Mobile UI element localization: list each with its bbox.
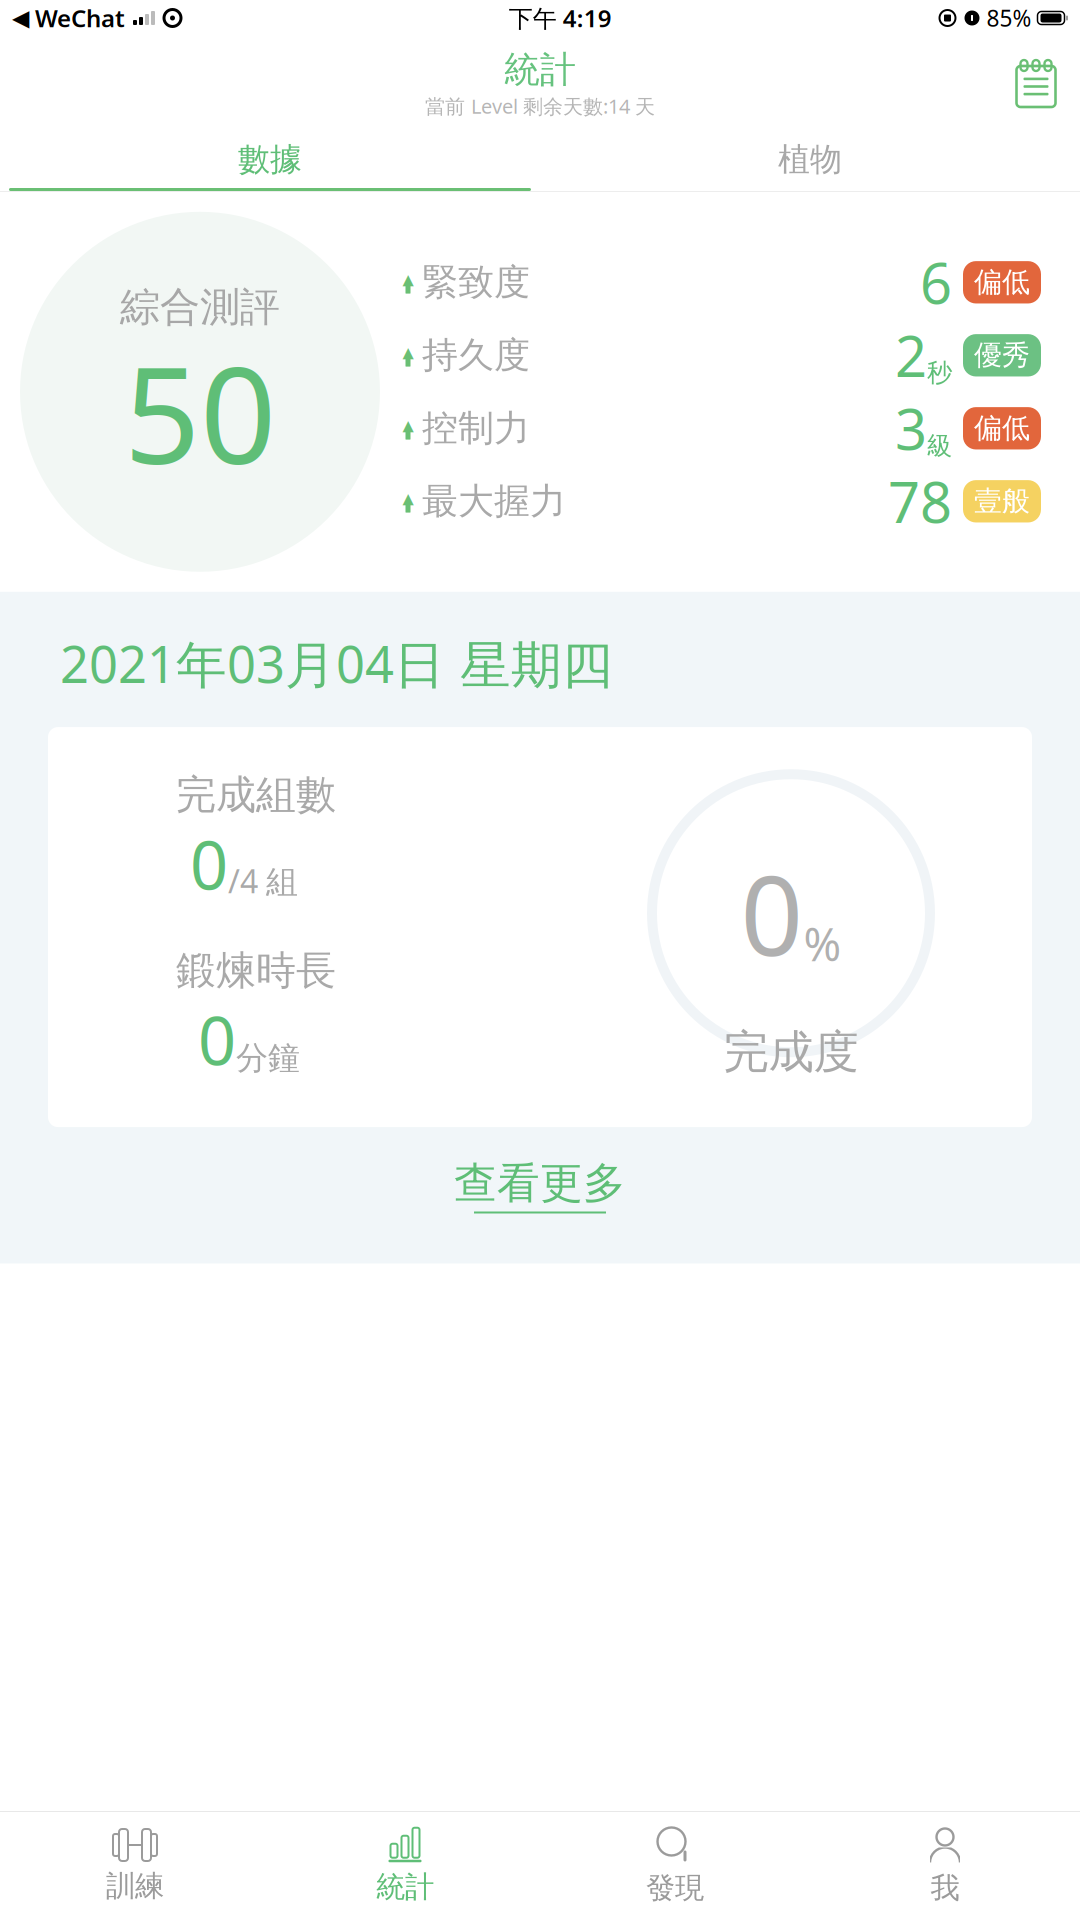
staticText: 下午 4:19 bbox=[509, 2, 612, 34]
staticText: 級 bbox=[927, 430, 952, 461]
staticText: 2021年03月04日 星期四 bbox=[60, 630, 613, 697]
staticText: 綜合測評 bbox=[120, 283, 280, 332]
staticText: 植物 bbox=[778, 140, 842, 179]
button[interactable]: 訓練 bbox=[0, 1816, 270, 1916]
staticText: 完成組數 bbox=[176, 770, 336, 819]
staticText: 控制力 bbox=[422, 406, 530, 450]
button[interactable]: 發現 bbox=[540, 1816, 810, 1916]
staticText: 2 bbox=[895, 318, 927, 392]
staticText: 我 bbox=[930, 1870, 959, 1906]
button[interactable]: 植物 bbox=[540, 131, 1080, 191]
staticText: 0 bbox=[190, 820, 228, 908]
staticText: 優秀 bbox=[974, 338, 1030, 372]
staticText: 完成度 bbox=[723, 1024, 858, 1080]
staticText: ▲ bbox=[402, 417, 413, 434]
staticText: 秒 bbox=[927, 357, 952, 388]
staticText: 統計 bbox=[504, 48, 576, 92]
staticText: 偏低 bbox=[974, 411, 1030, 445]
staticText: 分鐘 bbox=[236, 1038, 300, 1078]
staticText: ◀ bbox=[12, 5, 29, 31]
button[interactable]: 查看更多 bbox=[0, 1143, 1080, 1227]
staticText: WeChat bbox=[29, 2, 125, 34]
staticText: 0 bbox=[740, 841, 803, 986]
staticText: 持久度 bbox=[422, 333, 530, 377]
staticText: 當前 Level 剩余天數:14 天 bbox=[425, 93, 655, 119]
staticText: 50 bbox=[124, 324, 276, 501]
staticText: ▲ bbox=[402, 271, 413, 288]
staticText: 緊致度 bbox=[422, 260, 530, 304]
staticText: 訓練 bbox=[106, 1868, 164, 1904]
staticText: 78 bbox=[888, 464, 952, 538]
staticText: 3 bbox=[895, 391, 927, 465]
button[interactable]: 記錄 bbox=[1014, 55, 1080, 111]
staticText: 發現 bbox=[646, 1870, 704, 1906]
staticText: /4 組 bbox=[228, 860, 298, 902]
staticText: ▲ bbox=[402, 344, 413, 361]
staticText: % bbox=[803, 914, 841, 974]
staticText: 6 bbox=[920, 245, 952, 319]
staticText: 壹般 bbox=[974, 484, 1030, 518]
staticText: 85% bbox=[986, 3, 1031, 33]
staticText: 數據 bbox=[238, 140, 302, 179]
button[interactable]: 數據 bbox=[0, 131, 540, 191]
button[interactable]: 統計 bbox=[270, 1816, 540, 1916]
staticText: 偏低 bbox=[974, 265, 1030, 299]
staticText: 0 bbox=[198, 995, 236, 1084]
staticText: 統計 bbox=[376, 1869, 434, 1905]
staticText: 鍛煉時長 bbox=[176, 946, 336, 995]
staticText: 查看更多 bbox=[454, 1157, 626, 1209]
staticText: 最大握力 bbox=[422, 479, 566, 523]
staticText: ▲ bbox=[402, 490, 413, 507]
button[interactable]: 我 bbox=[810, 1816, 1080, 1916]
